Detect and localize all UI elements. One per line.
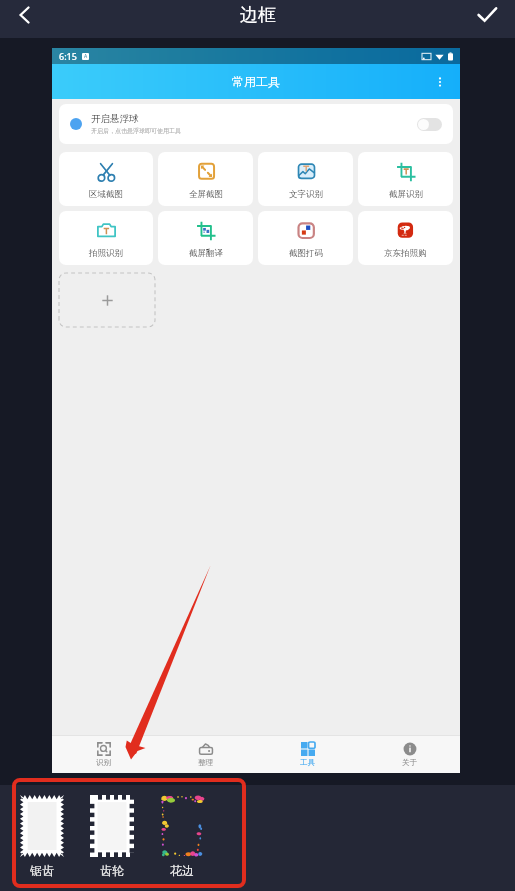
button[interactable]: 整理 (154, 736, 256, 773)
staticText: 常用工具 (232, 74, 280, 89)
button[interactable]: 截屏识别 (358, 152, 453, 206)
staticText: 文字识别 (289, 189, 323, 200)
staticText: 开启后，点击悬浮球即可使用工具 (91, 127, 181, 135)
staticText: 京东拍照购 (384, 248, 427, 259)
button[interactable]: 全屏截图 (158, 152, 253, 206)
button[interactable]: 锯齿 (7, 795, 77, 878)
button[interactable]: 识别 (52, 736, 154, 773)
button[interactable]: Toggle floating ball (417, 118, 442, 131)
button[interactable]: 花边 (147, 795, 217, 878)
staticText: 开启悬浮球 (91, 113, 139, 125)
button[interactable]: 开启悬浮球 (59, 104, 453, 144)
button[interactable]: 截图打码 (258, 211, 353, 265)
staticText: 工具 (300, 758, 315, 767)
staticText: 关于 (402, 758, 417, 767)
button[interactable]: 区域截图 (59, 152, 153, 206)
button[interactable]: 齿轮 (77, 795, 147, 878)
staticText: 锯齿 (30, 863, 54, 878)
button[interactable]: 截屏翻译 (158, 211, 253, 265)
button[interactable]: 拍照识别 (59, 211, 153, 265)
staticText: 花边 (170, 863, 194, 878)
button[interactable]: 关于 (358, 736, 460, 773)
staticText: 截屏识别 (389, 189, 423, 200)
staticText: 6:15 (59, 50, 77, 62)
button[interactable]: Back (0, 0, 50, 30)
staticText: 截屏翻译 (189, 248, 223, 259)
staticText: 边框 (240, 4, 276, 27)
button[interactable]: 文字识别 (258, 152, 353, 206)
button[interactable]: Add tool (59, 273, 155, 327)
button[interactable]: 京东拍照购 (358, 211, 453, 265)
button[interactable]: Confirm (458, 0, 515, 30)
button[interactable]: More options (434, 76, 446, 88)
staticText: 识别 (96, 758, 111, 767)
staticText: A (84, 53, 88, 60)
staticText: 齿轮 (100, 863, 124, 878)
staticText: 区域截图 (89, 189, 123, 200)
staticText: 整理 (198, 758, 213, 767)
staticText: 截图打码 (289, 248, 323, 259)
staticText: 全屏截图 (189, 189, 223, 200)
button[interactable]: 工具 (256, 736, 358, 773)
staticText: 拍照识别 (89, 248, 123, 259)
